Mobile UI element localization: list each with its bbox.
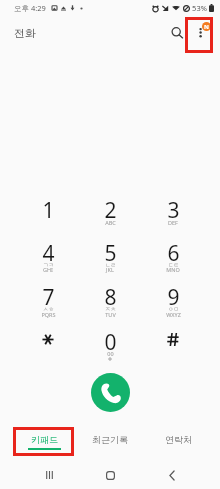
staticText: TUV [105, 311, 116, 318]
staticText: 최근기록 [92, 434, 128, 445]
button[interactable] [79, 281, 142, 325]
staticText: ㅇㅁ [168, 306, 179, 313]
staticText: 전화 [14, 26, 36, 40]
button[interactable]: 연락처 [145, 430, 211, 454]
button[interactable] [142, 281, 205, 325]
staticText: 9 [167, 283, 180, 312]
staticText: 53% [192, 3, 207, 13]
staticText: ㄴㄹ [105, 262, 116, 269]
staticText: 오후 4:29 [14, 3, 46, 13]
button[interactable] [17, 194, 80, 238]
staticText: 2 [104, 196, 117, 225]
button[interactable] [142, 326, 205, 370]
button[interactable] [79, 326, 142, 370]
button[interactable]: More options [188, 20, 214, 46]
button[interactable] [17, 237, 80, 281]
button[interactable] [79, 194, 142, 238]
button[interactable] [17, 281, 80, 325]
button[interactable] [17, 326, 80, 370]
staticText: 3 [167, 196, 180, 225]
staticText: ABC [105, 219, 116, 226]
button[interactable]: Recent apps [36, 462, 62, 488]
button[interactable] [79, 237, 142, 281]
staticText: 0 [104, 328, 117, 357]
staticText: MNO [166, 266, 180, 273]
staticText: N [204, 23, 209, 31]
button[interactable]: 전화 [14, 26, 36, 40]
button[interactable]: Home [97, 462, 123, 488]
staticText: 연락처 [165, 434, 192, 445]
button[interactable]: 최근기록 [77, 430, 143, 454]
staticText: 8 [104, 283, 117, 312]
staticText: JKL [106, 266, 114, 273]
button[interactable]: Back [159, 462, 185, 488]
staticText: DEF [168, 219, 178, 226]
staticText: 4 [42, 239, 55, 268]
staticText: 5 [104, 239, 117, 268]
button[interactable] [142, 237, 205, 281]
staticText: 키패드 [31, 434, 58, 445]
staticText: ㅅㅎ [43, 306, 54, 313]
staticText: ㅈㅊ [105, 306, 116, 313]
staticText: PQRS [41, 311, 56, 318]
staticText: 00 [107, 350, 114, 357]
button[interactable]: Search [163, 19, 189, 45]
button[interactable]: 키패드 [11, 430, 77, 454]
button[interactable]: Call [91, 373, 130, 412]
staticText: WXYZ [166, 311, 181, 318]
staticText: ㄷㅌ [168, 262, 179, 269]
button[interactable] [142, 194, 205, 238]
staticText: GHI [43, 266, 53, 273]
staticText: 6 [167, 239, 180, 268]
staticText: 7 [42, 283, 55, 312]
staticText: 1 [42, 196, 55, 225]
staticText: ㄱㅋ [43, 262, 54, 269]
